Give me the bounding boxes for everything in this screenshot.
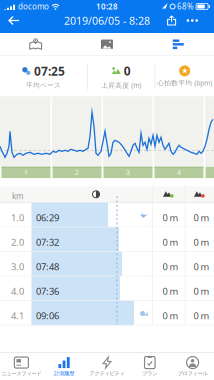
button[interactable]: Photos [71, 33, 143, 56]
staticText: 4.0 [11, 285, 24, 297]
staticText: docomo [18, 1, 49, 12]
staticText: 07:36 [36, 285, 59, 297]
staticText: 07:25 [34, 63, 65, 79]
staticText: プロフィール [178, 370, 208, 377]
button[interactable]: Back [0, 16, 19, 24]
staticText: 0 m [193, 260, 209, 273]
staticText: アクティビティ [89, 370, 124, 377]
staticText: 0 [124, 63, 131, 79]
button[interactable]: プラン [128, 353, 171, 380]
staticText: ニュースフィード [1, 370, 41, 377]
staticText: 0 m [162, 211, 178, 224]
button[interactable]: ニュースフィード [0, 353, 43, 380]
button[interactable]: アクティビティ [86, 353, 128, 380]
staticText: 0 m [193, 285, 209, 297]
staticText: 68% [177, 1, 194, 12]
staticText: 0 m [193, 309, 209, 322]
staticText: 3 [126, 168, 130, 177]
staticText: 0 m [162, 236, 178, 248]
staticText: 07:48 [36, 260, 59, 273]
staticText: 06:29 [36, 211, 59, 224]
staticText: 2019/06/05 - 8:28 [64, 13, 150, 28]
staticText: 09:06 [36, 309, 59, 322]
staticText: 2 [75, 168, 79, 177]
staticText: 心拍数平均 (bpm) [157, 78, 212, 87]
staticText: 4.1 [11, 309, 24, 322]
staticText: 10:28 [96, 1, 118, 12]
staticText: 0 m [193, 211, 209, 224]
button[interactable]: More [176, 19, 214, 22]
button[interactable]: 計測履歴 [43, 353, 86, 380]
button[interactable]: Map [0, 33, 71, 56]
staticText: 0 m [162, 285, 178, 297]
staticText: 0 m [162, 309, 178, 322]
staticText: 2.0 [11, 236, 24, 248]
button[interactable]: プロフィール [171, 353, 214, 380]
button[interactable]: Share [168, 16, 176, 25]
staticText: 0 m [162, 260, 178, 273]
button[interactable]: Splits [143, 33, 214, 56]
staticText: 3.0 [11, 260, 24, 273]
staticText: 計測履歴 [54, 370, 74, 377]
staticText: 0 m [193, 236, 209, 248]
staticText: km [12, 191, 23, 201]
staticText: プラン [142, 370, 157, 377]
staticText: 4 [177, 168, 181, 177]
staticText: 1.0 [11, 211, 24, 224]
staticText: 上昇高度 (m) [101, 81, 141, 90]
staticText: 平均ペース [26, 81, 61, 89]
staticText: 07:32 [36, 236, 59, 248]
staticText: 1 [24, 168, 28, 177]
